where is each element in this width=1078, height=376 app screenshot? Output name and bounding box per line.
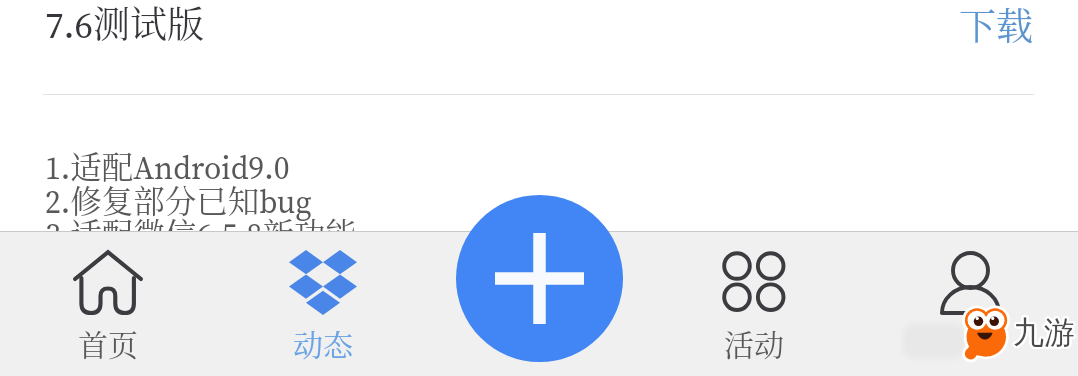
staticText: 九游 (1014, 314, 1076, 353)
staticText: 九游 (1015, 312, 1077, 351)
button[interactable]: Add (456, 195, 623, 362)
staticText: 九游 (1014, 313, 1076, 352)
button[interactable]: Feed (215, 232, 430, 376)
staticText: 九游 (1011, 313, 1073, 352)
staticText: 九游 (1012, 313, 1074, 352)
button[interactable]: 下载 (959, 0, 1033, 50)
staticText: 动态 (293, 321, 353, 364)
staticText: 7.6测试版 (45, 0, 205, 50)
staticText: 九游 (1013, 312, 1075, 351)
staticText: 九游 (1013, 314, 1075, 353)
button[interactable]: Profile (862, 232, 1078, 376)
staticText: 九游 (1012, 311, 1074, 350)
staticText: 九游 (1013, 313, 1075, 352)
staticText: 九游 (1013, 311, 1075, 350)
staticText: 九游 (1012, 315, 1074, 354)
staticText: 九游 (1012, 312, 1074, 351)
staticText: 九游 (1014, 315, 1076, 354)
staticText: 1.适配Android9.0 2.修复部分已知bug 3.适配微信6.5.8新功… (45, 143, 357, 256)
button[interactable]: Activity (646, 232, 862, 376)
staticText: 九游 (1015, 313, 1077, 352)
staticText: 九游 (1011, 312, 1073, 351)
staticText: 九游 (1012, 314, 1074, 353)
staticText: 九游 (1014, 311, 1076, 350)
button[interactable]: Home (0, 232, 215, 376)
staticText: 九游 (1014, 312, 1076, 351)
staticText: 首页 (78, 321, 138, 364)
staticText: 活动 (724, 321, 784, 364)
staticText: 九游 (1011, 314, 1073, 353)
staticText: 九游 (1013, 315, 1075, 354)
staticText: 九游 (1013, 313, 1075, 352)
staticText: 九游 (1015, 314, 1077, 353)
